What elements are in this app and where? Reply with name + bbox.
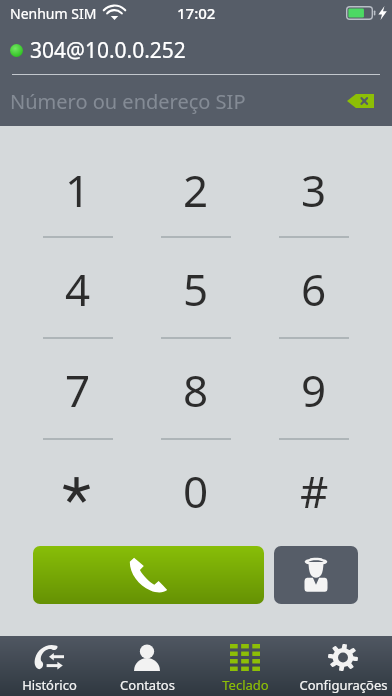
staticText: 4 <box>65 259 91 319</box>
button[interactable]: 4 <box>19 238 137 339</box>
button[interactable]: Histórico <box>0 636 98 696</box>
button[interactable] <box>19 440 137 541</box>
staticText: 2 <box>183 160 209 220</box>
staticText: 5 <box>183 259 209 319</box>
staticText: 7 <box>65 360 91 420</box>
button[interactable]: 8 <box>137 339 255 440</box>
staticText: 304@10.0.0.252 <box>30 36 186 65</box>
button[interactable]: 5 <box>137 238 255 339</box>
button[interactable]: 7 <box>19 339 137 440</box>
button[interactable]: 9 <box>255 339 373 440</box>
staticText: Histórico <box>22 676 77 694</box>
button[interactable]: Contatos <box>98 636 196 696</box>
button[interactable]: Operador <box>274 546 358 604</box>
staticText: 3 <box>301 160 327 220</box>
staticText: 1 <box>65 160 91 220</box>
button[interactable]: Apagar <box>343 87 377 115</box>
staticText: Teclado <box>222 676 269 694</box>
staticText: Configurações <box>299 676 388 694</box>
button[interactable]: 2 <box>137 126 255 238</box>
staticText: 9 <box>301 360 327 420</box>
staticText: 8 <box>183 360 209 420</box>
button[interactable]: Chamar <box>33 546 264 604</box>
staticText: Contatos <box>120 676 175 694</box>
button[interactable]: Configurações <box>294 636 392 696</box>
button[interactable]: Teclado <box>196 636 294 696</box>
staticText: Nenhum SIM <box>10 4 97 23</box>
button[interactable]: 1 <box>19 126 137 238</box>
staticText: 6 <box>301 259 327 319</box>
staticText: # <box>300 461 329 521</box>
staticText: Número ou endereço SIP <box>10 88 246 115</box>
button[interactable]: 6 <box>255 238 373 339</box>
staticText: 0 <box>183 461 209 521</box>
button[interactable]: 0 <box>137 440 255 541</box>
button[interactable]: 3 <box>255 126 373 238</box>
button[interactable]: # <box>255 440 373 541</box>
staticText: 17:02 <box>177 3 216 23</box>
